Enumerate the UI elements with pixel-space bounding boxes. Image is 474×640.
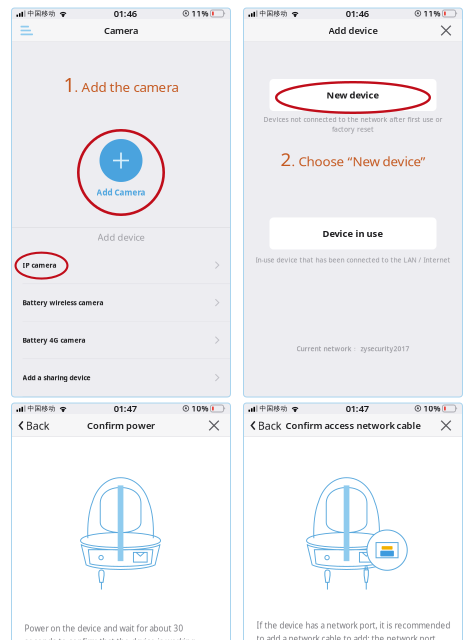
staticText: 10% <box>421 403 442 414</box>
staticText: Confirm power <box>87 419 155 432</box>
staticText: Devices not connected to the network aft… <box>263 115 442 124</box>
staticText: 01:47 <box>346 402 369 415</box>
staticText: . Add the camera <box>74 78 178 96</box>
staticText: 01:46 <box>346 7 369 20</box>
staticText: Add device <box>328 24 377 37</box>
button[interactable]: Add a sharing device <box>11 359 230 396</box>
staticText: Camera <box>104 24 138 37</box>
staticText: . Choose “New device” <box>291 152 425 170</box>
staticText: 01:47 <box>114 402 137 415</box>
button[interactable]: Battery wireless camera <box>11 284 230 321</box>
staticText: seconds to confirm that the device is wo… <box>24 636 195 640</box>
staticText: Add Camera <box>96 187 145 198</box>
button[interactable]: Back <box>250 413 282 438</box>
staticText: Battery wireless camera <box>22 298 103 307</box>
button[interactable]: Close <box>436 21 455 40</box>
staticText: Power on the device and wait for about 3… <box>24 623 183 634</box>
staticText: Current network： zysecurity2017 <box>296 344 409 353</box>
staticText: In-use device that has been connected to… <box>255 255 450 264</box>
staticText: to add a network cable to add; the netwo… <box>256 633 435 640</box>
staticText: 11% <box>189 8 210 19</box>
staticText: Back <box>258 418 282 433</box>
button[interactable]: Battery 4G camera <box>11 322 230 359</box>
button[interactable]: New device <box>269 79 436 111</box>
staticText: Add a sharing device <box>22 373 90 382</box>
button[interactable]: IP camera <box>11 247 230 284</box>
staticText: Confirm access network cable <box>285 419 420 432</box>
staticText: factory reset <box>332 125 374 134</box>
staticText: Battery 4G camera <box>22 336 85 345</box>
staticText: 中国移动 <box>257 9 287 18</box>
button[interactable]: Menu <box>18 19 35 42</box>
staticText: 2 <box>280 147 291 171</box>
staticText: If the device has a network port, it is … <box>256 620 450 631</box>
staticText: New device <box>326 89 379 101</box>
button[interactable]: Add Camera <box>96 42 145 227</box>
staticText: 01:46 <box>114 7 137 20</box>
staticText: 中国移动 <box>25 9 55 18</box>
staticText: 10% <box>189 403 210 414</box>
button[interactable]: Device in use <box>269 217 436 249</box>
button[interactable]: Close <box>436 416 455 435</box>
staticText: IP camera <box>22 261 56 270</box>
staticText: 中国移动 <box>257 404 287 413</box>
staticText: Add device <box>97 231 144 243</box>
staticText: Back <box>26 418 50 433</box>
staticText: 中国移动 <box>25 404 55 413</box>
staticText: Device in use <box>322 227 383 240</box>
staticText: 11% <box>421 8 442 19</box>
button[interactable]: Close <box>204 416 223 435</box>
button[interactable]: Back <box>18 413 50 438</box>
staticText: 1 <box>63 71 74 98</box>
